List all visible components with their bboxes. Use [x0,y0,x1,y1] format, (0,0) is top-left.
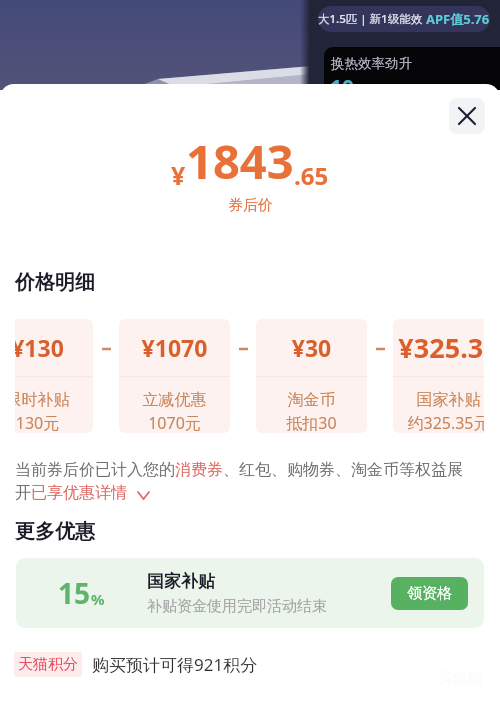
staticText: ¥30 [256,332,367,363]
button[interactable]: ¥130 [15,319,93,433]
staticText: .65 [294,159,329,192]
staticText: 限时补贴 [15,390,93,410]
staticText: 更多优惠 [15,519,95,544]
staticText: 国家补贴 [393,390,484,410]
staticText: % [91,589,105,609]
staticText: 换热效率劲升 [331,55,412,72]
button[interactable]: ¥1070 [119,319,230,433]
button[interactable]: 15 [16,558,484,628]
staticText: 10 [330,73,355,90]
button[interactable]: ¥325.35 [393,319,484,433]
staticText: 淘金币 [256,390,367,410]
staticText: ¥1070 [119,332,230,363]
staticText: 1070元 [119,412,230,433]
staticText: 130元 [15,412,93,433]
staticText: 价格明细 [15,270,95,295]
staticText: 当前券后价已计入您的消费券、红包、购物券、淘金币等权益展开已享优惠详情 [15,460,470,503]
staticText: 领资格 [407,584,452,603]
staticText: ¥ [171,158,186,192]
staticText: 天猫积分 [18,655,78,674]
staticText: 约325.35元 [393,412,484,433]
button[interactable]: ¥30 [256,319,367,433]
staticText: 立减优惠 [119,390,230,410]
staticText: 大1.5匹 | 新1级能效 [318,11,426,27]
staticText: 补贴资金使用完即活动结束 [147,597,327,616]
staticText: 券后价 [228,196,273,215]
staticText: ¥325.35 [393,329,484,366]
button[interactable]: 领资格 [391,577,468,610]
staticText: 1843 [186,129,294,193]
staticText: APF值5.76 [426,10,490,28]
staticText: 购买预计可得921积分 [92,653,258,676]
staticText: 15 [58,574,91,612]
staticText: ¥130 [15,332,93,363]
button[interactable]: Close [449,98,485,134]
staticText: 抵扣30 [256,412,367,433]
staticText: 国家补贴 [147,571,215,592]
